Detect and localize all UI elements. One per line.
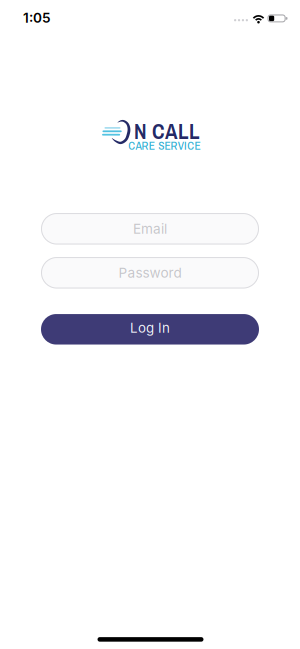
button[interactable]: Password [41,257,259,289]
button[interactable]: Email [41,213,259,245]
staticText: Log In [130,320,170,336]
staticText: Password [118,265,181,281]
button[interactable]: Log In [41,314,259,345]
staticText: N CALL [134,117,200,146]
staticText: Email [133,221,167,237]
staticText: CARE SERVICE [128,138,200,153]
staticText: 1:05 [23,10,51,26]
